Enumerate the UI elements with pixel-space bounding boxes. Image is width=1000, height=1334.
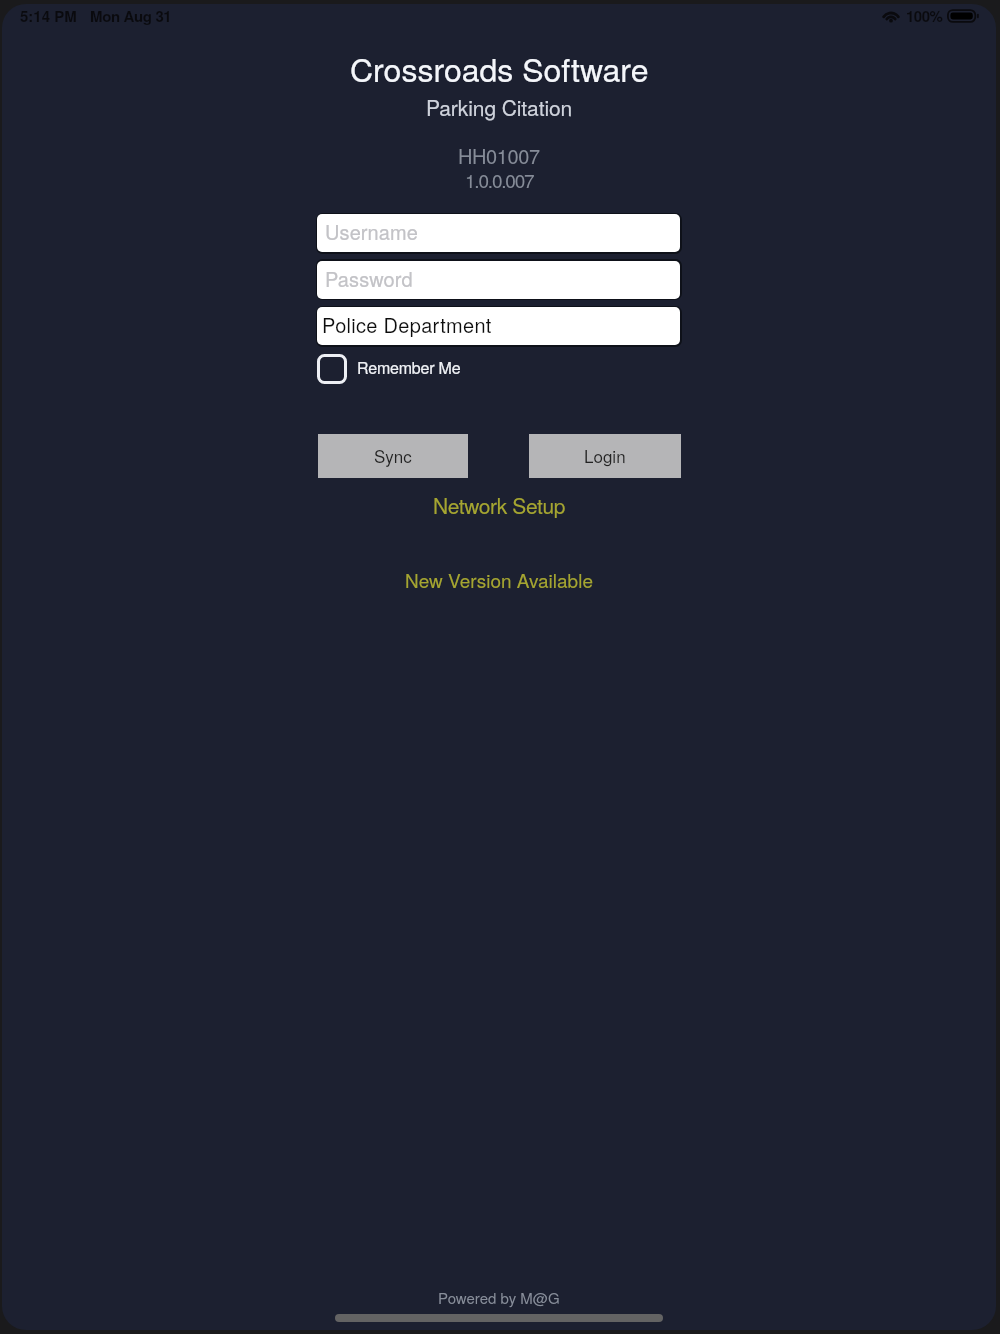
staticText: Login: [584, 443, 626, 467]
button[interactable]: Network Setup: [419, 484, 579, 526]
other: Wi-Fi: [882, 9, 900, 22]
staticText: 1.0.0.007: [465, 166, 534, 193]
button[interactable]: Remember Me: [317, 354, 461, 384]
staticText: Network Setup: [433, 490, 565, 520]
staticText: Police Department: [322, 310, 492, 339]
staticText: Mon Aug 31: [90, 5, 172, 26]
staticText: New Version Available: [405, 566, 593, 593]
button[interactable]: Login: [529, 434, 681, 478]
staticText: 100%: [906, 5, 943, 26]
button[interactable]: New Version Available: [391, 560, 607, 599]
other: Battery 100 percent: [947, 9, 979, 23]
staticText: Password: [325, 264, 413, 293]
staticText: Username: [325, 217, 419, 246]
button[interactable]: Police Department: [317, 307, 680, 345]
staticText: HH01007: [458, 141, 540, 170]
staticText: Remember Me: [357, 356, 461, 379]
staticText: Parking Citation: [426, 92, 573, 122]
staticText: Crossroads Software: [350, 45, 649, 91]
button[interactable]: Username: [317, 214, 680, 252]
staticText: 5:14 PM: [20, 5, 77, 26]
button[interactable]: Sync: [318, 434, 468, 478]
staticText: Sync: [374, 443, 412, 467]
staticText: Powered by M@G: [438, 1287, 560, 1308]
button[interactable]: Password: [317, 261, 680, 299]
